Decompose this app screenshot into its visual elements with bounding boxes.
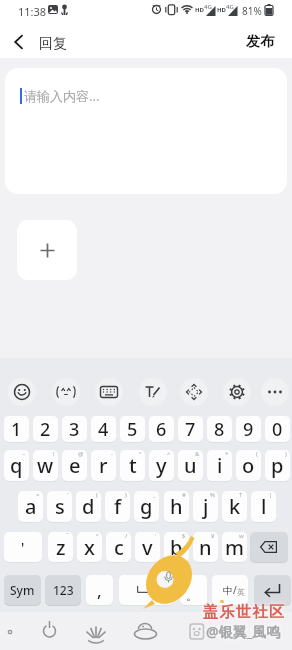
staticText: 4	[98, 417, 109, 442]
staticText: =	[36, 491, 40, 499]
button[interactable]: s	[47, 491, 72, 522]
button[interactable]: g	[134, 491, 159, 522]
button[interactable]: e	[62, 450, 87, 481]
staticText: r	[99, 452, 108, 479]
button[interactable]: 。	[180, 575, 207, 605]
button[interactable]: o	[236, 450, 261, 481]
button[interactable]: a	[18, 491, 43, 522]
button[interactable]	[119, 575, 174, 605]
staticText: e	[69, 452, 81, 479]
button[interactable]: t	[120, 450, 145, 481]
staticText: °	[96, 532, 99, 540]
button[interactable]: 1	[4, 416, 29, 442]
button[interactable]	[261, 378, 289, 406]
staticText: h	[170, 493, 183, 520]
staticText: /	[125, 532, 128, 540]
button[interactable]	[223, 378, 251, 406]
staticText: 3	[69, 417, 80, 442]
staticText: -	[111, 450, 113, 458]
staticText: 11:38	[18, 4, 47, 19]
button[interactable]: f	[105, 491, 130, 522]
button[interactable]	[254, 575, 291, 605]
button[interactable]: z	[48, 532, 73, 562]
button[interactable]: 9	[236, 416, 261, 442]
staticText: v	[142, 534, 153, 561]
button[interactable]	[139, 378, 167, 406]
staticText: *	[225, 450, 229, 458]
staticText: @	[78, 450, 84, 458]
button[interactable]	[8, 378, 36, 406]
button[interactable]: 请输入内容...	[5, 68, 287, 194]
button[interactable]	[95, 378, 123, 406]
button[interactable]: u	[178, 450, 203, 481]
staticText: ~	[22, 450, 26, 458]
button[interactable]: y	[149, 450, 174, 481]
button[interactable]: p	[265, 450, 290, 481]
button[interactable]: 8	[207, 416, 232, 442]
button[interactable]: 4	[91, 416, 116, 442]
button[interactable]: b	[164, 532, 189, 562]
button[interactable]: ,	[86, 575, 113, 605]
button[interactable]: i	[207, 450, 232, 481]
button[interactable]: 2	[33, 416, 58, 442]
staticText: 中/	[223, 583, 237, 597]
button[interactable]: 5	[120, 416, 145, 442]
staticText: 6	[156, 417, 167, 442]
staticText: 4G	[226, 3, 234, 11]
staticText: 。	[186, 588, 198, 603]
button[interactable]: q	[4, 450, 29, 481]
staticText: )	[285, 450, 287, 458]
button[interactable]	[34, 616, 64, 646]
button[interactable]: 3	[62, 416, 87, 442]
button[interactable]	[250, 532, 288, 562]
button[interactable]	[180, 378, 208, 406]
button[interactable]: m	[222, 532, 247, 562]
staticText: HD	[195, 6, 204, 14]
button[interactable]: '	[4, 532, 42, 562]
button[interactable]	[52, 378, 80, 406]
staticText: y	[156, 452, 167, 479]
staticText: 123	[53, 582, 74, 598]
button[interactable]: l	[251, 491, 276, 522]
button[interactable]: 发布	[240, 31, 280, 53]
staticText: '	[155, 532, 157, 540]
staticText: 2	[40, 417, 51, 442]
button[interactable]: h	[164, 491, 189, 522]
staticText: g	[140, 493, 153, 520]
button[interactable]: 0	[265, 416, 290, 442]
staticText: 8	[214, 417, 225, 442]
button[interactable]: 7	[178, 416, 203, 442]
button[interactable]: r	[91, 450, 116, 481]
button[interactable]: 6	[149, 416, 174, 442]
button[interactable]: j	[193, 491, 218, 522]
staticText: 7	[185, 417, 196, 442]
staticText: (	[96, 491, 98, 499]
button[interactable]: 123	[45, 575, 81, 605]
button[interactable]	[130, 616, 160, 646]
staticText: (	[256, 450, 258, 458]
staticText: ↑	[238, 491, 244, 498]
button[interactable]	[81, 616, 111, 646]
button[interactable]: x	[77, 532, 102, 562]
button[interactable]: Sym	[4, 575, 41, 605]
button[interactable]: n	[193, 532, 218, 562]
staticText: w	[239, 532, 244, 540]
staticText: °	[139, 450, 142, 458]
button[interactable]: w	[33, 450, 58, 481]
staticText: 0	[272, 417, 283, 442]
button[interactable]: 中/	[212, 575, 248, 605]
button[interactable]: v	[135, 532, 160, 562]
staticText: x	[84, 534, 95, 561]
button[interactable]	[17, 220, 77, 280]
staticText: ¥	[211, 532, 215, 540]
staticText: 盖乐世社区	[203, 603, 286, 622]
button[interactable]	[8, 32, 28, 52]
button[interactable]: d	[76, 491, 101, 522]
button[interactable]: k	[222, 491, 247, 522]
button[interactable]: c	[106, 532, 131, 562]
staticText: 1	[11, 417, 22, 442]
staticText: 5	[127, 417, 138, 442]
staticText: &	[195, 450, 200, 458]
staticText: 9	[243, 417, 254, 442]
staticText: $	[182, 532, 186, 540]
